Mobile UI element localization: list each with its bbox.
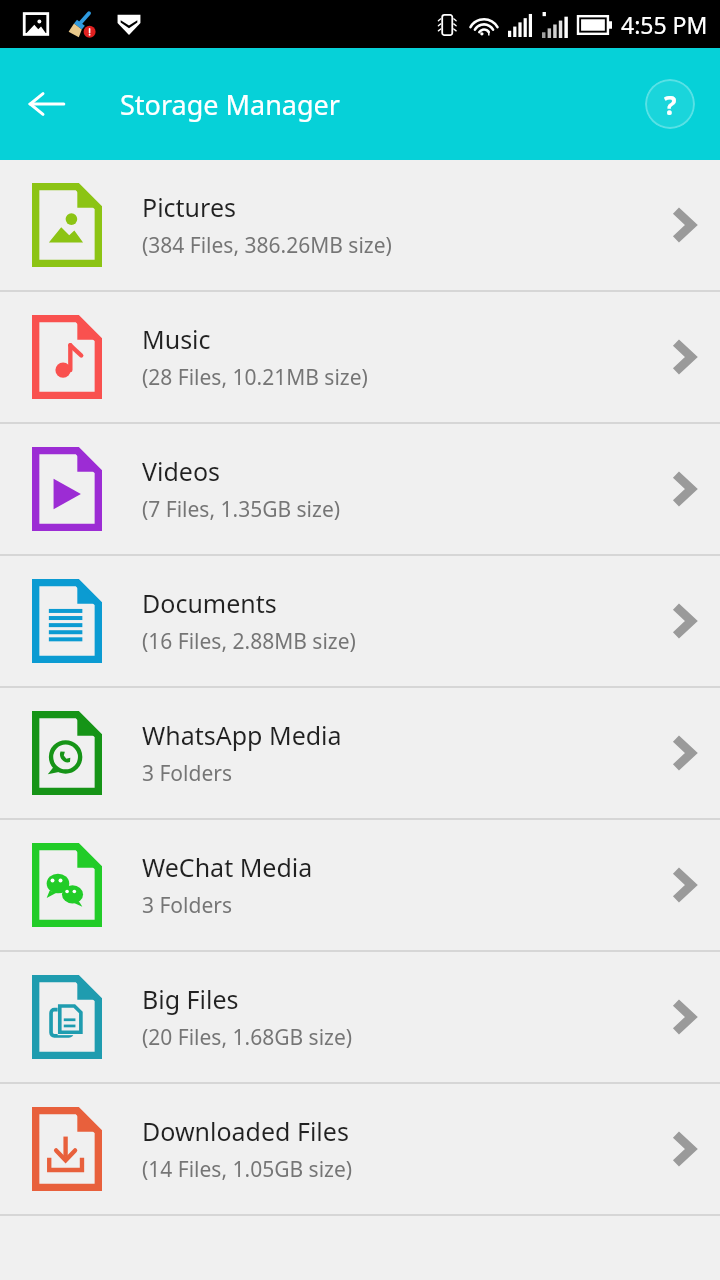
staticText: ? [664,87,677,122]
staticText: (16 Files, 2.88MB size) [142,627,356,656]
button[interactable]: WeChat Media [0,820,720,950]
staticText: (20 Files, 1.68GB size) [142,1023,353,1052]
staticText: (28 Files, 10.21MB size) [142,363,368,392]
staticText: Downloaded Files [142,1114,349,1148]
button[interactable]: Music [0,292,720,422]
staticText: (384 Files, 386.26MB size) [142,231,392,260]
staticText: Music [142,322,211,356]
staticText: (14 Files, 1.05GB size) [142,1155,353,1184]
staticText: Big Files [142,982,239,1016]
staticText: Pictures [142,190,236,224]
button[interactable]: Big Files [0,952,720,1082]
button[interactable]: Videos [0,424,720,554]
staticText: 4:55 PM [621,9,708,40]
staticText: Storage Manager [120,86,340,123]
staticText: WhatsApp Media [142,718,342,752]
staticText: (7 Files, 1.35GB size) [142,495,341,524]
staticText: 3 Folders [142,759,232,788]
button[interactable]: Back [18,75,76,133]
staticText: Documents [142,586,277,620]
staticText: Videos [142,454,221,488]
staticText: WeChat Media [142,850,313,884]
staticText: 3 Folders [142,891,232,920]
button[interactable]: Help [645,79,695,129]
button[interactable]: Downloaded Files [0,1084,720,1214]
button[interactable]: WhatsApp Media [0,688,720,818]
button[interactable]: Pictures [0,160,720,290]
button[interactable]: Documents [0,556,720,686]
